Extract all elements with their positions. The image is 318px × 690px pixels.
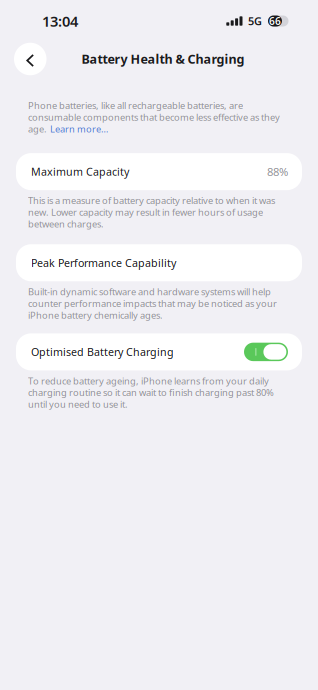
staticText: Learn more… (50, 122, 108, 135)
staticText: To reduce battery ageing, iPhone learns … (28, 374, 269, 387)
staticText: new. Lower capacity may result in fewer … (28, 206, 263, 218)
staticText: Peak Performance Capability (31, 255, 176, 270)
staticText: until you need to use it. (28, 398, 128, 410)
staticText: 13:04 (42, 11, 78, 31)
staticText: charging routine so it can wait to finis… (28, 386, 274, 399)
staticText: between charges. (28, 218, 104, 230)
staticText: This is a measure of battery capacity re… (28, 194, 275, 207)
staticText: Optimised Battery Charging (31, 345, 174, 359)
staticText: 88% (267, 164, 288, 179)
staticText: 66 (269, 14, 281, 28)
staticText: Phone batteries, like all rechargeable b… (28, 99, 243, 112)
button[interactable]: Peak Performance Capability (0, 244, 318, 281)
staticText: iPhone battery chemically ages. (28, 309, 163, 321)
button[interactable]: Maximum Capacity (0, 153, 318, 190)
staticText: Battery Health & Charging (81, 50, 244, 68)
staticText: Built-in dynamic software and hardware s… (28, 285, 271, 298)
button[interactable]: Back (14, 43, 46, 75)
staticText: 5G (248, 14, 262, 28)
button[interactable]: Optimised Battery Charging (0, 333, 318, 370)
staticText: Maximum Capacity (31, 164, 129, 179)
button[interactable]: Learn more… (47, 122, 108, 135)
staticText: consumable components that become less e… (28, 111, 280, 123)
staticText: counter performance impacts that may be … (28, 297, 277, 310)
staticText: age. (28, 122, 47, 135)
